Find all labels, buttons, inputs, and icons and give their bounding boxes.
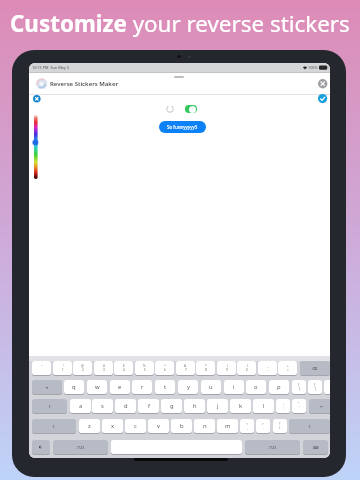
button[interactable]: z [79,419,100,433]
staticText: r [141,383,144,391]
button[interactable]: ⇪ [32,399,67,413]
staticText: . [263,426,264,430]
button[interactable]: ⇧ [289,419,330,433]
button[interactable]: c [125,419,146,433]
staticText: < [246,422,248,426]
button[interactable] [185,105,197,113]
staticText: ! [63,364,64,368]
staticText: l [263,402,265,410]
staticText: m [225,422,231,430]
button[interactable]: & [176,361,195,375]
button[interactable] [33,95,41,103]
button[interactable]: > [256,419,270,433]
staticText: s [101,402,104,410]
button[interactable]: r [132,380,152,394]
button[interactable]: ↵ [309,399,330,413]
button[interactable] [318,79,327,88]
staticText: ; [283,406,284,410]
button[interactable]: x [102,419,123,433]
button[interactable]: ( [217,361,236,375]
staticText: 0 [246,368,248,372]
button[interactable]: k [230,399,251,413]
button[interactable]: * [196,361,215,375]
button[interactable]: l [253,399,274,413]
staticText: ) [247,364,248,368]
button[interactable] [318,94,327,103]
button[interactable]: ◐ [32,440,50,454]
staticText: Customize your reverse stickers [10,8,350,39]
button[interactable] [166,105,174,113]
staticText: ~ [41,364,43,368]
button[interactable]: ^ [155,361,174,375]
button[interactable]: t [155,380,175,394]
button[interactable]: i [224,380,244,394]
button[interactable]: ⌨ [303,440,328,454]
button[interactable]: So funnyyyyy5 [159,121,206,133]
button[interactable]: y [178,380,198,394]
button[interactable]: # [94,361,113,375]
button[interactable]: f [138,399,159,413]
button[interactable]: < [240,419,254,433]
staticText: + [287,364,289,368]
button[interactable]: n [194,419,215,433]
button[interactable]: ⇥ [32,380,62,394]
button[interactable] [34,115,38,179]
button[interactable]: d [115,399,136,413]
button[interactable]: m [217,419,238,433]
staticText: .?123 [268,445,277,450]
staticText: g [170,402,174,410]
staticText: 5 [144,368,146,372]
staticText: & [184,364,187,368]
staticText: } [314,383,316,387]
staticText: 8 [205,368,207,372]
button[interactable]: | [324,380,330,394]
button[interactable]: % [135,361,154,375]
button[interactable]: + [278,361,297,375]
button[interactable]: ? [273,419,287,433]
staticText: 100% [308,65,318,70]
button[interactable]: ! [53,361,72,375]
staticText: ^ [164,364,166,368]
button[interactable]: : [276,399,290,413]
staticText: _ [267,364,269,368]
button[interactable]: p [269,380,289,394]
button[interactable]: } [308,380,322,394]
button[interactable]: j [207,399,228,413]
button[interactable]: s [92,399,113,413]
button[interactable]: h [184,399,205,413]
staticText: t [164,383,167,391]
button[interactable]: e [110,380,130,394]
staticText: z [88,422,91,430]
button[interactable]: .?123 [53,440,108,454]
button[interactable]: @ [73,361,92,375]
staticText: $ [123,364,125,368]
button[interactable]: " [292,399,306,413]
staticText: ' [299,406,300,410]
staticText: So funnyyyyy5 [167,124,198,130]
button[interactable]: o [246,380,266,394]
staticText: # [103,364,105,368]
staticText: x [111,422,115,430]
button[interactable]: ⌫ [300,361,330,375]
button[interactable]: w [87,380,107,394]
button[interactable]: .?123 [245,440,300,454]
button[interactable]: v [148,419,169,433]
button[interactable]: q [64,380,84,394]
button[interactable]: g [161,399,182,413]
button[interactable]: u [201,380,221,394]
button[interactable]: { [292,380,306,394]
staticText: d [124,402,128,410]
staticText: y [187,383,190,391]
button[interactable]: ⇧ [32,419,76,433]
button[interactable]: _ [258,361,277,375]
button[interactable]: $ [114,361,133,375]
staticText: n [203,422,207,430]
staticText: i [233,383,235,391]
staticText: : [283,402,284,406]
staticText: , [247,426,248,430]
button[interactable]: ~ [32,361,51,375]
button[interactable]: ) [237,361,256,375]
button[interactable]: b [171,419,192,433]
button[interactable]: a [70,399,91,413]
